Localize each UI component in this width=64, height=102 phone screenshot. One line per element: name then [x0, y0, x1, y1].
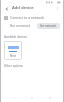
- staticText: Connect to a network: [10, 15, 45, 20]
- button[interactable]: More options: [54, 5, 61, 12]
- staticText: Nest Display: [6, 54, 20, 58]
- button[interactable]: Connect to a network: [4, 15, 60, 20]
- staticText: Not connected: [10, 24, 30, 28]
- staticText: Add device: [12, 5, 34, 11]
- button[interactable]: Other options: [4, 64, 23, 68]
- button[interactable]: Set network: [37, 23, 60, 29]
- button[interactable]: Nest Display: [4, 41, 22, 60]
- button[interactable]: Recent apps: [46, 94, 54, 102]
- button[interactable]: Back: [3, 5, 10, 12]
- button[interactable]: Home: [28, 94, 36, 102]
- staticText: Set network: [40, 24, 57, 28]
- staticText: Available devices: [4, 35, 27, 39]
